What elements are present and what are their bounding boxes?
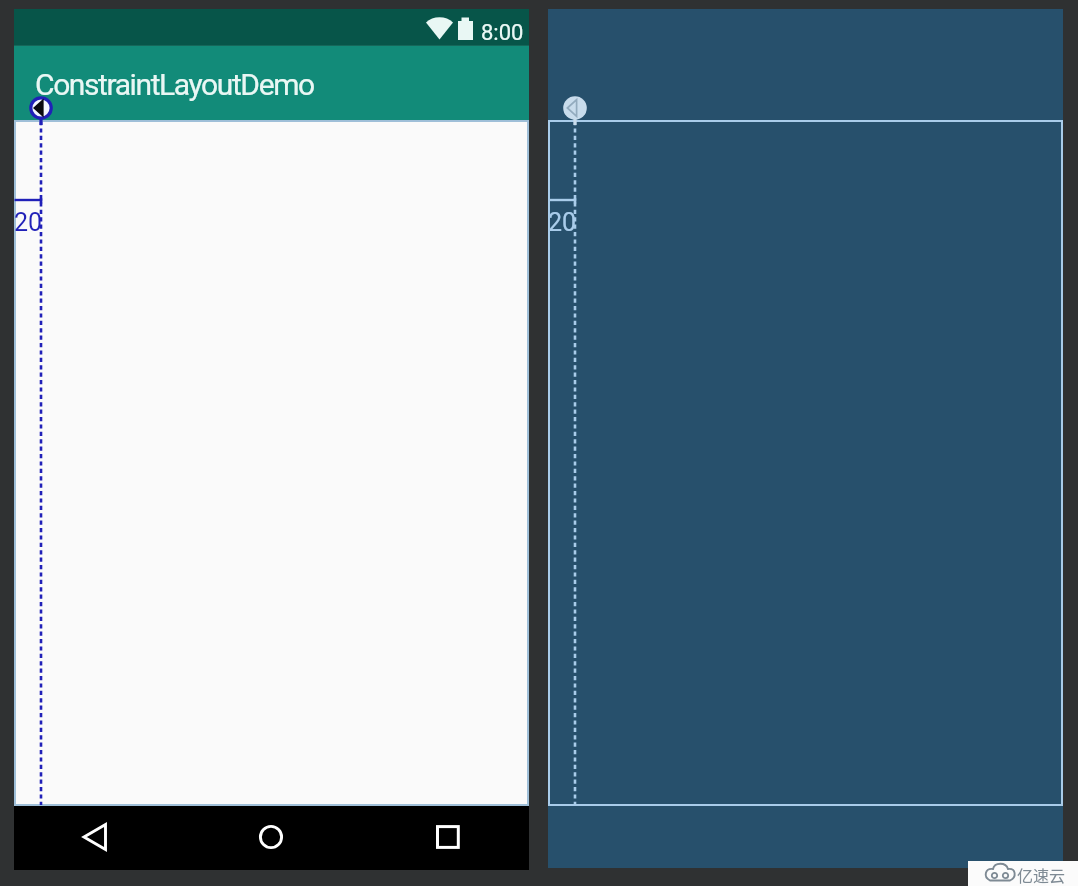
button[interactable]: Vertical guideline handle bbox=[561, 94, 589, 122]
button[interactable]: Blueprint view bbox=[548, 9, 1063, 868]
staticText: 20 bbox=[14, 208, 43, 237]
button[interactable]: Device preview of ConstraintLayoutDemo bbox=[14, 9, 529, 870]
staticText: 20 bbox=[548, 208, 577, 237]
staticText: 8:00 bbox=[481, 20, 524, 46]
button[interactable]: Vertical guideline handle bbox=[27, 94, 55, 122]
staticText: ConstraintLayoutDemo bbox=[35, 67, 314, 102]
staticText: 亿速云 bbox=[1017, 863, 1066, 886]
